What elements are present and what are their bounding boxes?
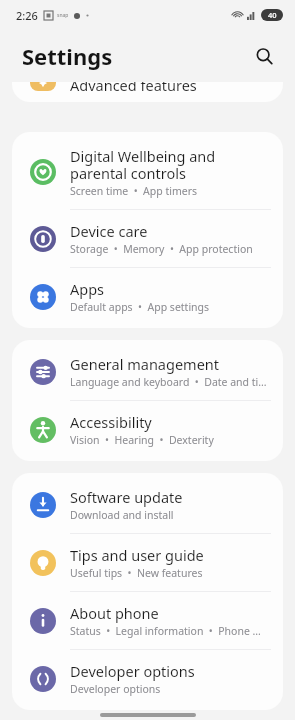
button[interactable]: Search — [247, 39, 281, 73]
button[interactable]: Accessibility — [12, 401, 283, 458]
staticText: Developer options — [70, 682, 161, 696]
button[interactable]: Apps — [12, 268, 283, 325]
staticText: snap — [57, 12, 69, 19]
staticText: About phone — [70, 603, 159, 623]
button[interactable]: General management — [12, 343, 283, 401]
staticText: Screen time • App timers — [70, 184, 198, 198]
staticText: 40 — [268, 10, 277, 20]
button[interactable]: Digital Wellbeing and parental controls — [12, 135, 283, 210]
staticText: Status • Legal information • Phone name — [70, 624, 267, 638]
staticText: Digital Wellbeing and parental controls — [70, 146, 267, 183]
staticText: Tips and user guide — [70, 545, 204, 565]
staticText: Settings — [22, 41, 113, 71]
staticText: General management — [70, 354, 220, 374]
staticText: 2:26 — [16, 8, 38, 23]
staticText: Device care — [70, 221, 148, 241]
button[interactable]: Tips and user guide — [12, 534, 283, 592]
button[interactable]: About phone — [12, 592, 283, 650]
staticText: Useful tips • New features — [70, 566, 203, 580]
button[interactable]: Advanced features — [12, 82, 283, 102]
staticText: Apps — [70, 279, 105, 299]
staticText: Accessibility — [70, 412, 152, 432]
staticText: Vision • Hearing • Dexterity — [70, 433, 214, 447]
staticText: Default apps • App settings — [70, 300, 210, 314]
staticText: Storage • Memory • App protection — [70, 242, 253, 256]
staticText: Advanced features — [70, 82, 197, 91]
button[interactable]: Device care — [12, 210, 283, 268]
staticText: Download and install — [70, 508, 174, 522]
button[interactable]: Software update — [12, 476, 283, 534]
staticText: Developer options — [70, 661, 195, 681]
staticText: Software update — [70, 487, 183, 507]
staticText: Language and keyboard • Date and time — [70, 375, 267, 389]
button[interactable]: Developer options — [12, 650, 283, 707]
